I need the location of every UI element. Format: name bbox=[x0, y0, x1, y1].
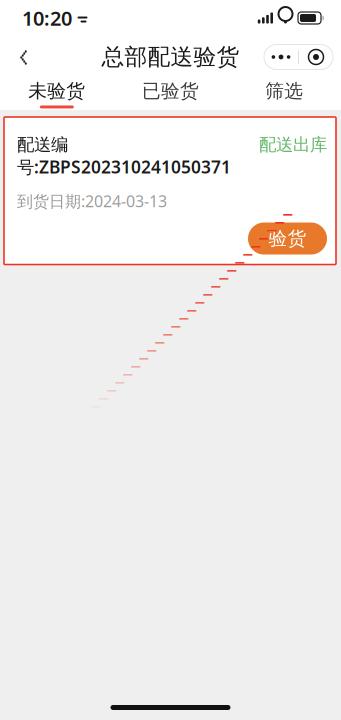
button[interactable]: Close mini program bbox=[299, 44, 333, 69]
staticText: 未验货 bbox=[28, 79, 85, 102]
staticText: 配送编号:ZBPS202310241050371 bbox=[17, 134, 231, 178]
staticText: 到货日期:2024-03-13 bbox=[17, 190, 167, 211]
button[interactable]: More bbox=[264, 44, 298, 69]
button[interactable]: 筛选 bbox=[227, 78, 341, 110]
staticText: 配送出库 bbox=[259, 134, 327, 155]
button[interactable]: 已验货 bbox=[114, 78, 227, 110]
button[interactable]: 未验货 bbox=[0, 78, 114, 110]
staticText: 总部配送验货 bbox=[101, 43, 239, 71]
staticText: 验货 bbox=[268, 227, 306, 250]
staticText: 已验货 bbox=[142, 79, 199, 102]
button[interactable]: Back bbox=[0, 36, 44, 78]
staticText: 10:20 bbox=[22, 5, 72, 31]
button[interactable]: 验货 bbox=[248, 223, 327, 255]
staticText: 筛选 bbox=[265, 79, 303, 102]
